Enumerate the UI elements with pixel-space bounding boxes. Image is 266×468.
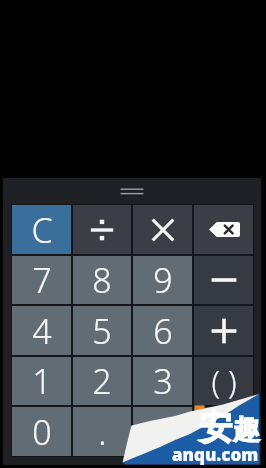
staticText: 7 [32,257,52,303]
button[interactable] [194,407,253,456]
button[interactable]: C [12,205,71,254]
staticText: anqu.com [172,443,259,466]
staticText: 8 [92,257,112,303]
button[interactable]: 0 [12,407,71,456]
staticText: 4 [32,308,52,354]
button[interactable]: Divide [73,205,131,254]
staticText: . [98,409,107,455]
button[interactable]: 1 [12,357,71,405]
staticText: 6 [153,308,173,354]
staticText: = [154,411,172,453]
button[interactable]: 3 [133,357,192,405]
button[interactable]: . [73,407,131,456]
staticText: 9 [153,257,173,303]
button[interactable]: Multiply [133,205,192,254]
button[interactable]: Plus [194,306,253,355]
button[interactable]: 6 [133,306,192,355]
staticText: 0 [32,409,52,455]
button[interactable]: 9 [133,256,192,304]
staticText: 1 [32,358,52,404]
button[interactable]: 5 [73,306,131,355]
button[interactable]: 2 [73,357,131,405]
staticText: 5 [92,308,112,354]
staticText: 安 [199,407,232,449]
button[interactable]: ( ) [194,357,253,405]
button[interactable]: = [133,407,192,456]
staticText: C [31,207,53,253]
staticText: 2 [92,358,112,404]
button[interactable]: Delete [194,205,253,254]
button[interactable]: 4 [12,306,71,355]
button[interactable]: Minus [194,256,253,304]
staticText: 3 [153,358,173,404]
staticText: 趣 [233,413,260,447]
staticText: ( ) [211,360,237,402]
button[interactable]: 7 [12,256,71,304]
button[interactable]: 8 [73,256,131,304]
